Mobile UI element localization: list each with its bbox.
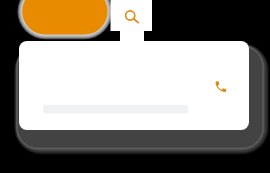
button[interactable] — [0, 0, 270, 173]
